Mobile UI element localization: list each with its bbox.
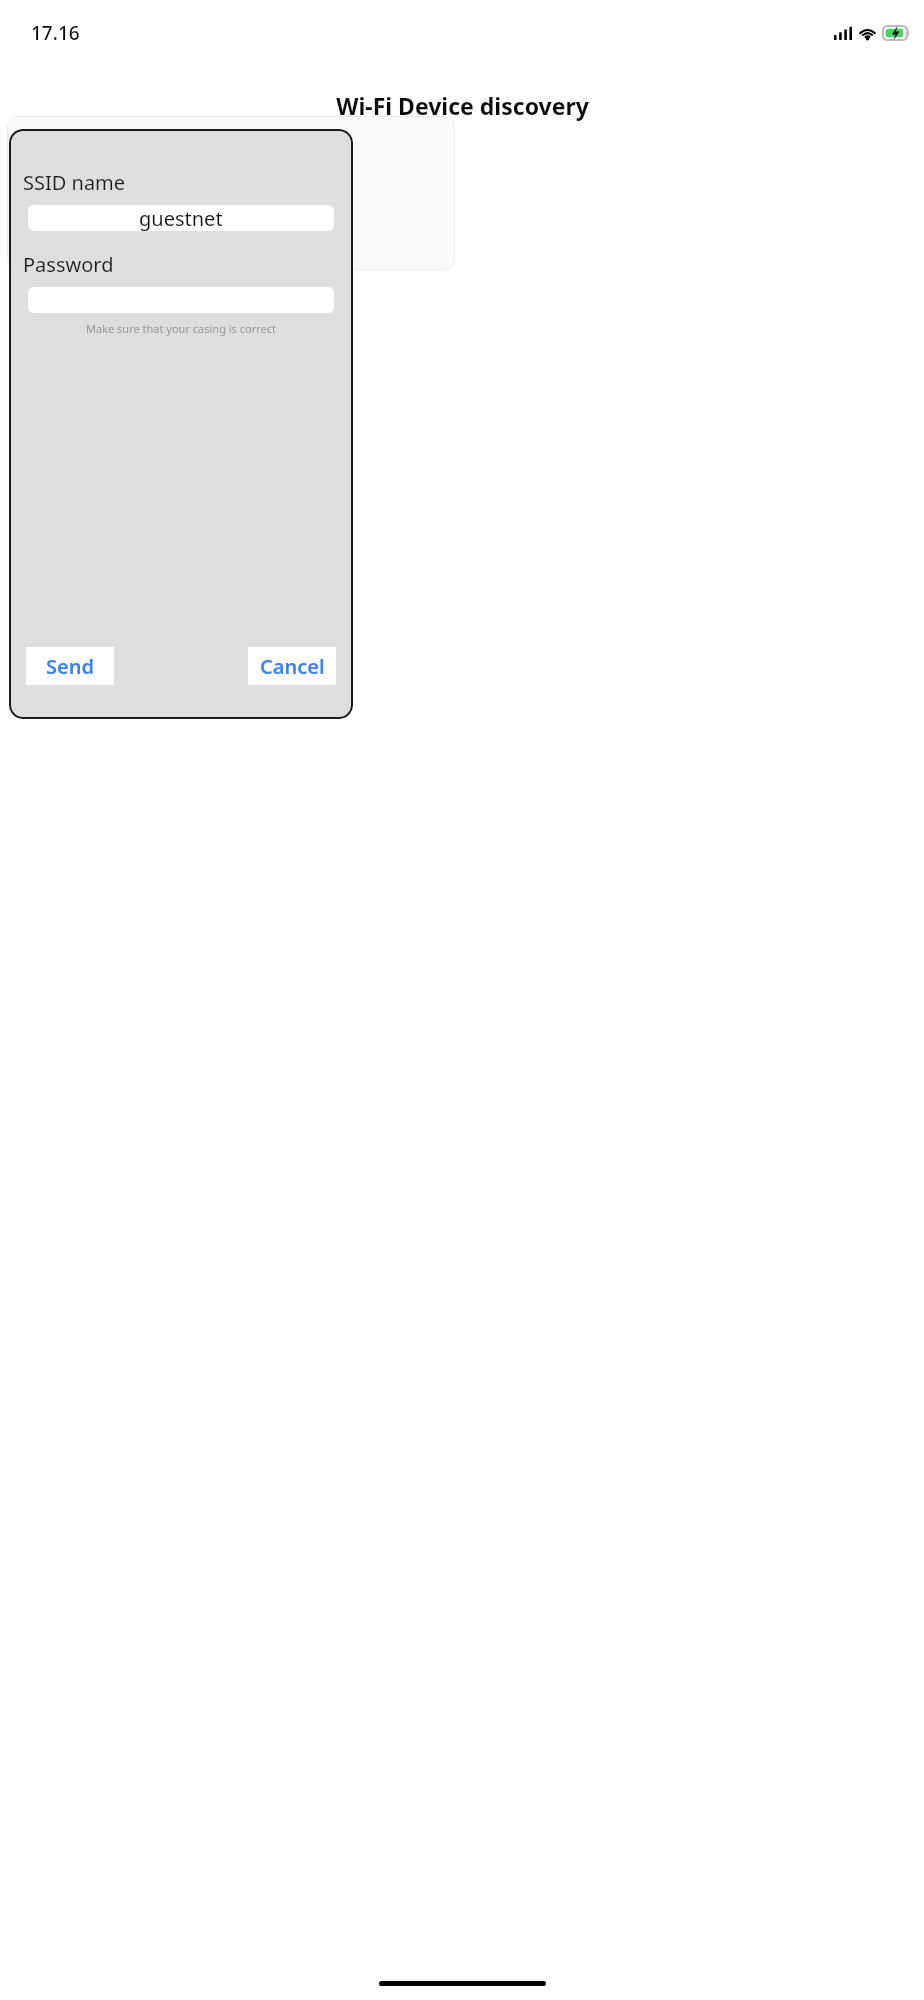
- button[interactable]: Send: [26, 647, 114, 685]
- button[interactable]: Cancel: [248, 647, 336, 685]
- staticText: Wi-Fi Device discovery: [336, 90, 589, 121]
- staticText: Password: [23, 251, 114, 278]
- staticText: SSID name: [23, 169, 126, 196]
- staticText: guestnet: [139, 205, 223, 231]
- staticText: Cancel: [260, 653, 325, 680]
- staticText: 17.16: [31, 20, 80, 46]
- button[interactable]: guestnet: [28, 205, 334, 231]
- staticText: Make sure that your casing is correct: [86, 321, 276, 336]
- staticText: Wi-Fi Device: [147, 173, 316, 214]
- staticText: Send: [46, 653, 94, 680]
